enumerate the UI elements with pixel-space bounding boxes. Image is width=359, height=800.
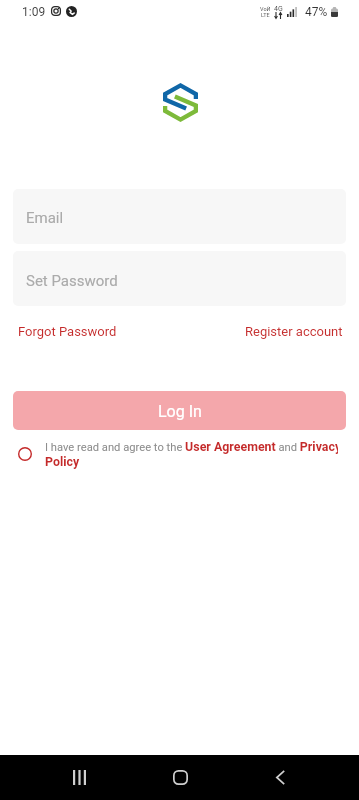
staticText: Set Password — [26, 272, 118, 290]
button[interactable]: Recents — [46, 757, 112, 798]
staticText: VoЍ — [260, 6, 271, 12]
button[interactable]: Forgot Password — [18, 324, 117, 339]
button[interactable]: Register account — [245, 324, 343, 339]
staticText: LTE — [261, 12, 270, 18]
button[interactable]: Set Password — [13, 251, 346, 306]
staticText: Log In — [158, 402, 202, 421]
staticText: 4G — [274, 5, 283, 13]
other: Agree to terms — [18, 439, 32, 465]
button[interactable]: Email — [13, 189, 346, 244]
button[interactable]: Log In — [13, 391, 346, 430]
button[interactable]: Agree to terms — [18, 439, 359, 471]
button[interactable]: Back — [247, 757, 313, 798]
staticText: Email — [26, 209, 64, 227]
staticText: 47% — [305, 5, 328, 19]
button[interactable]: Home — [147, 757, 213, 798]
staticText: I have read and agree to the User Agreem… — [45, 439, 338, 454]
staticText: 1:09 — [22, 5, 46, 19]
staticText: Policy — [45, 454, 80, 469]
